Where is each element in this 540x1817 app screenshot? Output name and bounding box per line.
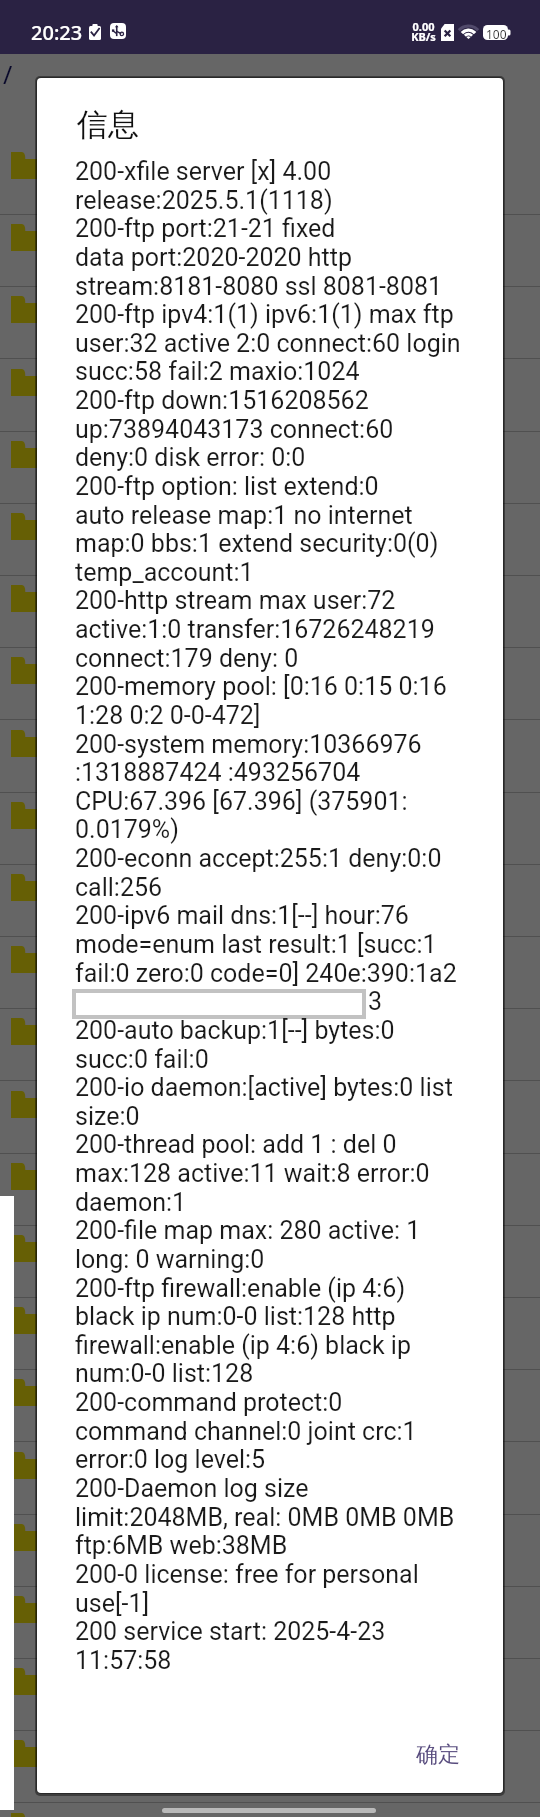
staticText: release:2025.5.1(1118) — [75, 186, 333, 215]
staticText: 2025-05-01 12:00 — [60, 402, 189, 424]
staticText: 2025-05-01 12:00 — [60, 835, 189, 857]
staticText: daemon:1 — [75, 1188, 187, 1217]
staticText: 2025-05-01 12:00 — [60, 1124, 189, 1146]
staticText: Download — [60, 513, 165, 543]
staticText: 11:57:58 — [75, 1646, 172, 1675]
staticText: tencent — [60, 1091, 139, 1121]
staticText: 200-ftp option: list extend:0 — [75, 472, 379, 501]
staticText: fail:0 zero:0 code=0] 240e:390:1a2 — [75, 959, 457, 988]
staticText: 100 — [486, 26, 507, 42]
staticText: Alarms — [60, 152, 133, 182]
staticText: call:256 — [75, 873, 163, 902]
staticText: up:73894043173 connect:60 — [75, 415, 394, 444]
staticText: 2025-05-01 12:00 — [60, 1268, 189, 1290]
staticText: 3 — [368, 987, 383, 1016]
staticText: 确定 — [416, 1741, 460, 1769]
staticText: size:0 — [75, 1102, 140, 1131]
staticText: obb — [60, 1379, 101, 1409]
staticText: error:0 log level:5 — [75, 1445, 266, 1474]
staticText: xfile — [60, 1163, 103, 1193]
staticText: Documents — [60, 441, 179, 471]
staticText: Podcasts — [60, 874, 153, 904]
staticText: sdcard — [60, 1452, 130, 1482]
staticText: 2025-05-01 12:00 — [60, 1340, 189, 1362]
staticText: Notifications — [60, 730, 191, 760]
staticText: 200-ftp ipv4:1(1) ipv6:1(1) max ftp — [75, 300, 454, 329]
staticText: 2025-05-01 12:00 — [60, 1051, 189, 1073]
staticText: 2025-05-01 12:00 — [60, 907, 189, 929]
staticText: backups — [60, 296, 146, 326]
staticText: 2025-05-01 12:00 — [60, 474, 189, 496]
staticText: 2025-05-01 12:00 — [60, 185, 189, 207]
staticText: 2025-05-01 12:00 — [60, 546, 189, 568]
staticText: CPU:67.396 [67.396] (375901: — [75, 787, 408, 816]
staticText: 200-ftp port:21-21 fixed — [75, 214, 336, 243]
staticText: temp — [60, 1596, 115, 1626]
staticText: 200-ftp firewall:enable (ip 4:6) — [75, 1274, 406, 1303]
staticText: / — [3, 57, 13, 91]
staticText: command channel:0 joint crc:1 — [75, 1417, 417, 1446]
staticText: 200-econn accept:255:1 deny:0:0 — [75, 844, 442, 873]
staticText: 200-memory pool: [0:16 0:15 0:16 — [75, 672, 447, 701]
staticText: Android — [60, 224, 143, 254]
staticText: 2025-05-01 12:00 — [60, 979, 189, 1001]
staticText: max:128 active:11 wait:8 error:0 — [75, 1159, 430, 1188]
staticText: 200-ftp down:1516208562 — [75, 386, 369, 415]
staticText: 2025-05-01 12:00 — [60, 1485, 189, 1507]
staticText: 2025-05-01 12:00 — [60, 690, 189, 712]
staticText: 200-file map max: 280 active: 1 — [75, 1216, 421, 1245]
staticText: active:1:0 transfer:16726248219 — [75, 615, 435, 644]
staticText: auto release map:1 no internet — [75, 501, 413, 530]
staticText: mode=enum last result:1 [succ:1 — [75, 930, 437, 959]
staticText: 2025-05-01 12:00 — [60, 1412, 189, 1434]
staticText: 2025-05-01 12:00 — [60, 1557, 189, 1579]
staticText: Recordings — [60, 946, 176, 976]
staticText: Pictures — [60, 802, 143, 832]
staticText: Movies — [60, 585, 133, 615]
staticText: limit:2048MB, real: 0MB 0MB 0MB — [75, 1503, 455, 1532]
staticText: succ:58 fail:2 maxio:1024 — [75, 357, 360, 386]
staticText: 1:28 0:2 0-0-472] — [75, 701, 261, 730]
staticText: deny:0 disk error: 0:0 — [75, 443, 306, 472]
staticText: Ringtones — [60, 1018, 165, 1048]
staticText: 2025-05-01 12:00 — [60, 763, 189, 785]
staticText: 信息 — [77, 105, 139, 144]
staticText: 2025-05-01 12:00 — [60, 1773, 189, 1795]
staticText: user:32 active 2:0 connect:60 login — [75, 329, 461, 358]
staticText: system — [60, 1524, 134, 1554]
staticText: 200-io daemon:[active] bytes:0 list — [75, 1073, 453, 1102]
staticText: 2025-05-01 12:00 — [60, 257, 189, 279]
staticText: 2025-05-01 12:00 — [60, 1196, 189, 1218]
staticText: 200-xfile server [x] 4.00 — [75, 157, 332, 186]
staticText: 0.00 KB/s — [411, 19, 436, 44]
staticText: DCIM — [60, 369, 118, 399]
staticText: 200-0 license: free for personal — [75, 1560, 419, 1589]
staticText: long: 0 warning:0 — [75, 1245, 265, 1274]
staticText: data port:2020-2020 http — [75, 243, 352, 272]
staticText: firewall:enable (ip 4:6) black ip — [75, 1331, 411, 1360]
staticText: temp_account:1 — [75, 558, 254, 587]
staticText: ftp:6MB web:38MB — [75, 1531, 288, 1560]
button[interactable]: 确定 — [398, 1728, 478, 1782]
staticText: 0.0179%) — [75, 815, 179, 844]
staticText: 2025-05-01 12:00 — [60, 618, 189, 640]
staticText: 200-http stream max user:72 — [75, 586, 396, 615]
staticText: logs — [60, 1668, 104, 1698]
staticText: 200-Daemon log size — [75, 1474, 309, 1503]
staticText: 2025-05-01 12:00 — [60, 329, 189, 351]
staticText: use[-1] — [75, 1589, 150, 1618]
staticText: media — [60, 1307, 125, 1337]
staticText: black ip num:0-0 list:128 http — [75, 1302, 396, 1331]
staticText: num:0-0 list:128 — [75, 1359, 254, 1388]
staticText: 200-system memory:10366976 — [75, 730, 422, 759]
staticText: 200-thread pool: add 1 : del 0 — [75, 1130, 397, 1159]
staticText: succ:0 fail:0 — [75, 1045, 209, 1074]
staticText: Music — [60, 657, 121, 687]
staticText: :1318887424 :493256704 — [75, 758, 361, 787]
staticText: map:0 bbs:1 extend security:0(0) — [75, 529, 439, 558]
staticText: data — [60, 1235, 107, 1265]
staticText: 200-ipv6 mail dns:1[--] hour:76 — [75, 901, 409, 930]
